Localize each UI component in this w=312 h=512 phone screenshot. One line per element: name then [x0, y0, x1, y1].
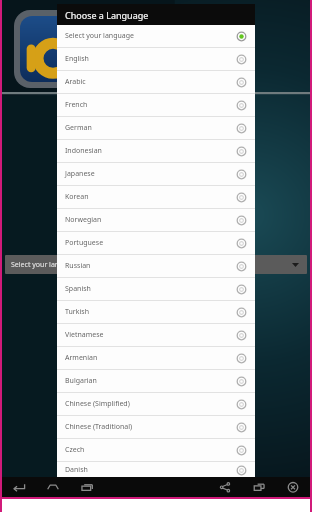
- button[interactable]: Spanish: [57, 278, 255, 301]
- staticText: Armenian: [65, 353, 236, 363]
- button[interactable]: Bulgarian: [57, 370, 255, 393]
- staticText: French: [65, 100, 236, 110]
- button[interactable]: Vietnamese: [57, 324, 255, 347]
- button[interactable]: Portuguese: [57, 232, 255, 255]
- button[interactable]: Share: [216, 478, 234, 496]
- staticText: Select your language: [65, 31, 236, 41]
- staticText: Vietnamese: [65, 330, 236, 340]
- staticText: Chinese (Traditional): [65, 422, 236, 432]
- staticText: German: [65, 123, 236, 133]
- staticText: Norwegian: [65, 215, 236, 225]
- button[interactable]: Screenshot: [250, 478, 268, 496]
- staticText: Chinese (Simplified): [65, 399, 236, 409]
- button[interactable]: Norwegian: [57, 209, 255, 232]
- button[interactable]: German: [57, 117, 255, 140]
- staticText: Indonesian: [65, 146, 236, 156]
- staticText: Japanese: [65, 169, 236, 179]
- staticText: Spanish: [65, 284, 236, 294]
- button[interactable]: Chinese (Traditional): [57, 416, 255, 439]
- button[interactable]: Chinese (Simplified): [57, 393, 255, 416]
- button[interactable]: Czech: [57, 439, 255, 462]
- button[interactable]: Home: [44, 478, 62, 496]
- button[interactable]: Danish: [57, 462, 255, 478]
- button[interactable]: Russian: [57, 255, 255, 278]
- button[interactable]: Recents: [78, 478, 96, 496]
- button[interactable]: Arabic: [57, 71, 255, 94]
- staticText: Bulgarian: [65, 376, 236, 386]
- staticText: Danish: [65, 465, 236, 475]
- button[interactable]: Korean: [57, 186, 255, 209]
- button[interactable]: Turkish: [57, 301, 255, 324]
- staticText: Choose a Language: [65, 9, 149, 21]
- button[interactable]: French: [57, 94, 255, 117]
- button[interactable]: Armenian: [57, 347, 255, 370]
- button[interactable]: Select your language: [5, 255, 307, 274]
- staticText: Portuguese: [65, 238, 236, 248]
- staticText: Korean: [65, 192, 236, 202]
- staticText: Arabic: [65, 77, 236, 87]
- button[interactable]: Japanese: [57, 163, 255, 186]
- button[interactable]: Select your language: [57, 25, 255, 48]
- button[interactable]: Indonesian: [57, 140, 255, 163]
- button[interactable]: English: [57, 48, 255, 71]
- staticText: English: [65, 54, 236, 64]
- staticText: Russian: [65, 261, 236, 271]
- button[interactable]: Back: [10, 478, 28, 496]
- staticText: Turkish: [65, 307, 236, 317]
- staticText: Select your language: [11, 260, 80, 270]
- staticText: Czech: [65, 445, 236, 455]
- button[interactable]: Close: [284, 478, 302, 496]
